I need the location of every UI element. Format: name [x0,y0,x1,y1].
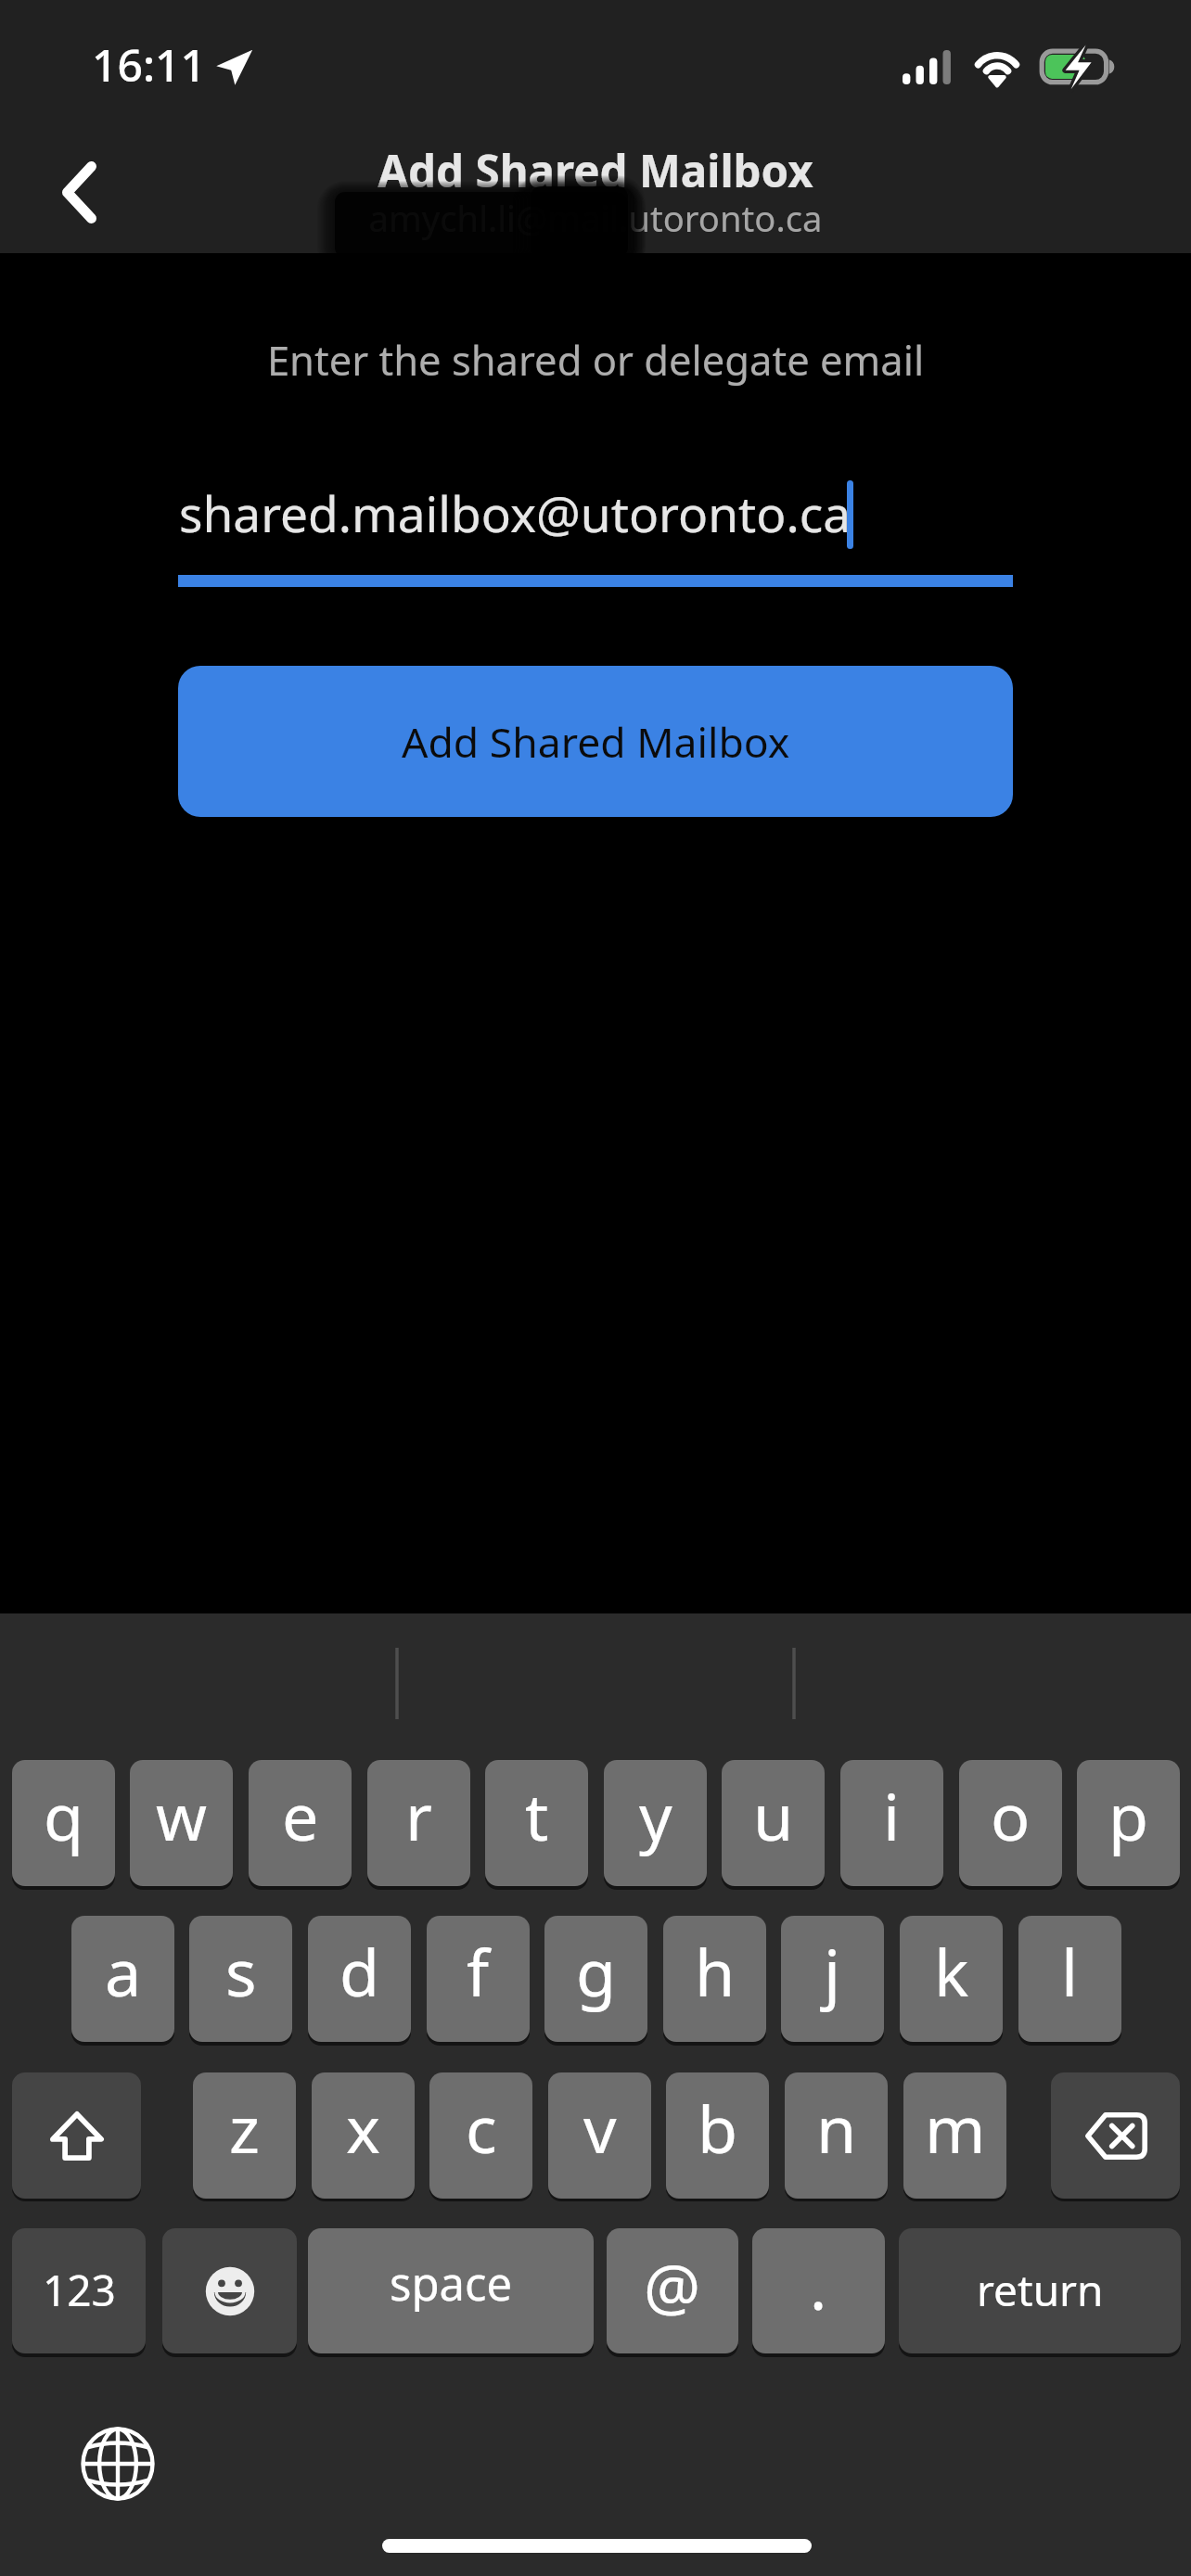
button[interactable]: g [544,1916,647,2042]
staticText: y [639,1771,672,1859]
staticText: c [466,2084,497,2172]
button[interactable]: v [548,2072,651,2199]
button[interactable]: t [485,1760,588,1886]
button[interactable]: Shift [12,2072,141,2199]
button[interactable]: Backspace [1051,2072,1180,2199]
staticText: shared.mailbox@utoronto.ca [179,479,852,546]
button[interactable]: m [903,2072,1006,2199]
button[interactable]: w [130,1760,233,1886]
button[interactable]: b [666,2072,769,2199]
staticText: i [883,1771,901,1859]
button[interactable]: d [308,1916,411,2042]
button[interactable]: Emoji [162,2228,297,2353]
staticText: a [105,1927,142,2015]
staticText: k [934,1927,969,2015]
button[interactable]: j [781,1916,884,2042]
button[interactable]: h [663,1916,766,2042]
staticText: f [467,1927,490,2015]
button[interactable]: i [840,1760,943,1886]
staticText: Enter the shared or delegate email [0,332,1191,387]
staticText: m [925,2084,986,2172]
staticText: v [583,2084,617,2172]
button[interactable]: o [959,1760,1062,1886]
staticText: g [576,1927,617,2015]
staticText: r [405,1771,432,1859]
staticText: Add Shared Mailbox [0,140,1191,200]
staticText: b [698,2084,738,2172]
button[interactable]: space [308,2228,594,2353]
staticText: p [1108,1771,1149,1859]
staticText: amychl.li@mail.utoronto.ca [0,194,1191,242]
button[interactable]: x [312,2072,415,2199]
staticText: q [44,1771,84,1859]
button[interactable]: p [1077,1760,1180,1886]
staticText: x [346,2084,381,2172]
staticText: s [225,1927,257,2015]
staticText: h [695,1927,736,2015]
staticText: u [753,1771,794,1859]
button[interactable]: q [12,1760,115,1886]
button[interactable]: z [193,2072,296,2199]
staticText: d [339,1927,380,2015]
staticText: n [816,2084,857,2172]
button[interactable]: a [71,1916,174,2042]
staticText: z [229,2084,260,2172]
button[interactable]: r [367,1760,470,1886]
button[interactable]: . [752,2228,885,2353]
button[interactable]: k [900,1916,1003,2042]
button[interactable]: return [899,2228,1181,2353]
button[interactable]: f [427,1916,530,2042]
button[interactable]: Back [23,136,134,248]
staticText: o [991,1771,1031,1859]
button[interactable]: Switch keyboard [69,2415,167,2513]
button[interactable]: u [722,1760,825,1886]
staticText: e [282,1771,319,1859]
button[interactable]: Add Shared Mailbox [178,666,1013,817]
staticText: Add Shared Mailbox [402,713,790,770]
staticText: t [525,1771,549,1859]
staticText: @ [644,2242,701,2328]
staticText: . [810,2242,827,2328]
button[interactable]: s [189,1916,292,2042]
staticText: j [824,1927,841,2015]
button[interactable]: @ [607,2228,738,2353]
button[interactable]: 123 [12,2228,146,2353]
staticText: w [156,1771,208,1859]
button[interactable]: y [604,1760,707,1886]
staticText: return [977,2261,1104,2319]
staticText: l [1061,1927,1079,2015]
staticText: 16:11 [92,34,206,95]
button[interactable]: l [1018,1916,1121,2042]
button[interactable]: n [785,2072,888,2199]
staticText: space [390,2252,513,2315]
button[interactable]: Email address field [178,464,1013,587]
button[interactable]: e [249,1760,352,1886]
staticText: 123 [43,2261,116,2319]
button[interactable]: c [429,2072,532,2199]
